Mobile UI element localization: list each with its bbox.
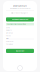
staticText: Notes <box>6 35 11 37</box>
staticText: Order summary <box>13 5 27 7</box>
staticText: Place order <box>15 50 24 52</box>
staticText: Review before you confirm <box>10 7 30 9</box>
staticText: Gift wrap <box>6 32 13 34</box>
staticText: Payment method verified <box>7 23 26 25</box>
staticText: Arrives Friday, Jun 14 <box>13 12 28 14</box>
staticText: Delivery <box>6 29 12 31</box>
staticText: Items <box>6 27 10 29</box>
button[interactable]: Continue to payment <box>6 17 34 21</box>
button[interactable]: Place order <box>6 49 34 53</box>
staticText: Total due <box>6 43 13 45</box>
staticText: Continue to payment <box>11 18 28 20</box>
staticText: Subtotal <box>6 40 13 42</box>
staticText: Billing <box>6 37 9 39</box>
